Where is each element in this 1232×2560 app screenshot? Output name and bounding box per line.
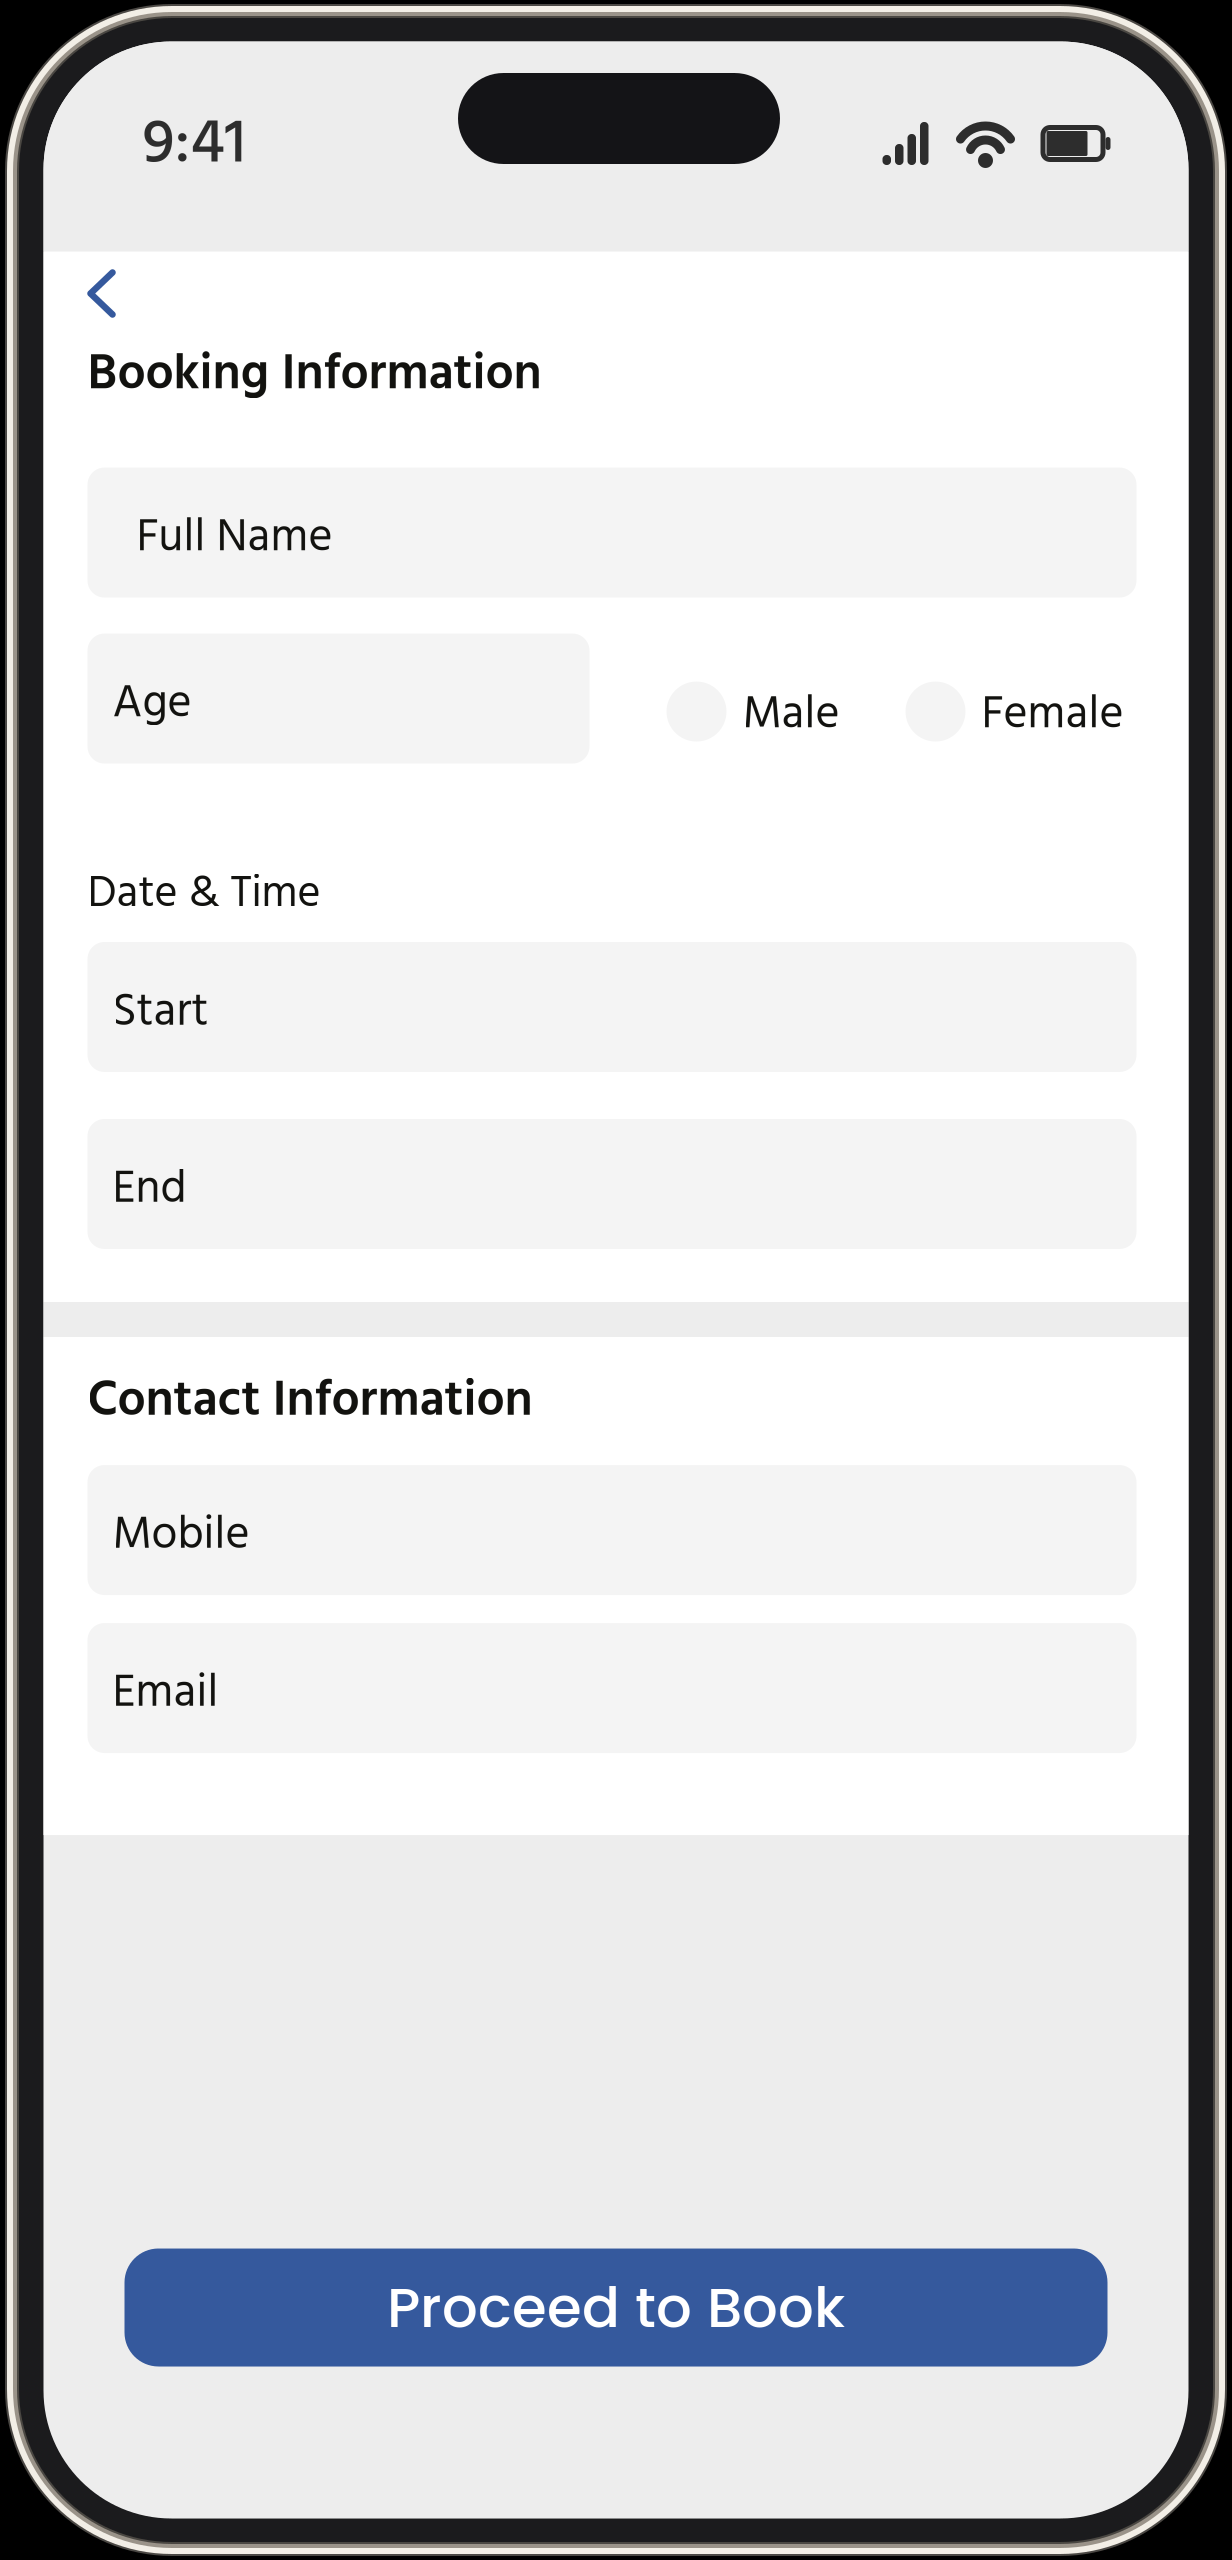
button[interactable]: Back: [87, 268, 121, 320]
staticText: Email: [112, 1657, 218, 1731]
staticText: Age: [112, 668, 191, 741]
button[interactable]: Female: [905, 675, 1123, 748]
button[interactable]: Email: [87, 1623, 1136, 1753]
staticText: End: [112, 1153, 186, 1227]
button[interactable]: Mobile: [87, 1465, 1136, 1595]
button[interactable]: Proceed to Book: [124, 2248, 1107, 2366]
staticText: Start: [112, 976, 208, 1050]
staticText: Female: [981, 679, 1123, 752]
button[interactable]: Male: [666, 675, 839, 748]
button[interactable]: Age: [87, 633, 589, 763]
button[interactable]: End: [87, 1119, 1136, 1249]
button[interactable]: Start: [87, 942, 1136, 1072]
staticText: Proceed to Book: [387, 2268, 845, 2347]
button[interactable]: Full Name: [87, 467, 1136, 597]
staticText: Mobile: [112, 1499, 249, 1573]
staticText: Full Name: [136, 502, 332, 575]
staticText: Male: [742, 679, 839, 752]
staticText: Booking Information: [87, 335, 541, 415]
staticText: Date & Time: [87, 859, 320, 930]
staticText: Contact Information: [87, 1362, 532, 1442]
staticText: 9:41: [142, 95, 245, 196]
